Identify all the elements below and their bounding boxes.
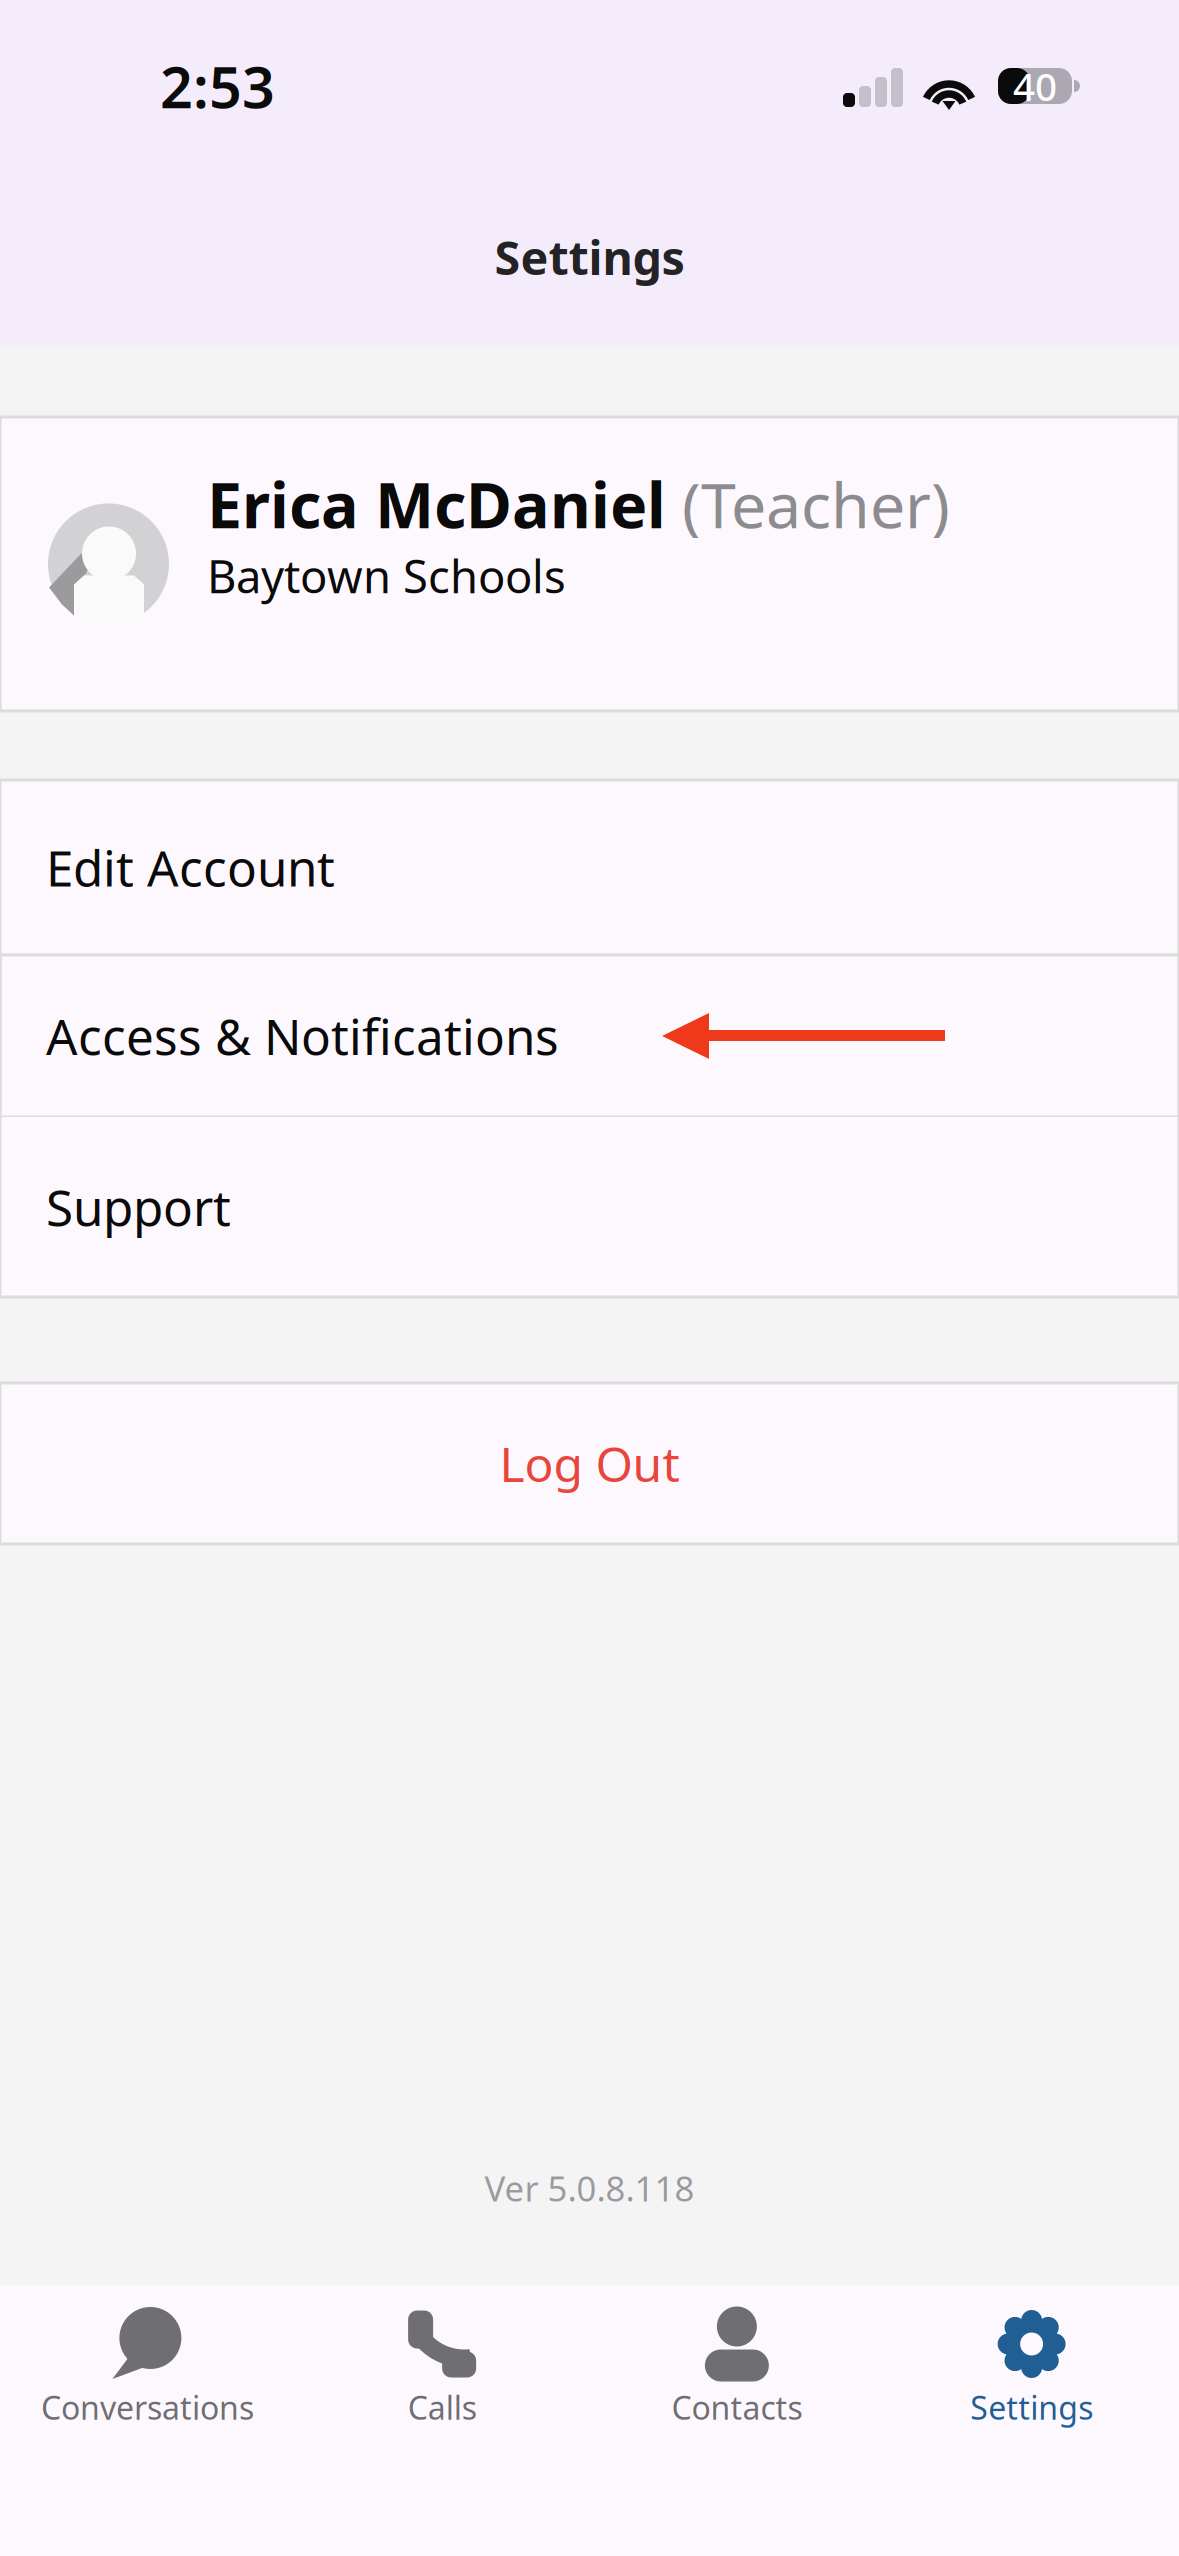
staticText: Contacts: [671, 2386, 802, 2428]
button[interactable]: Contacts: [589, 2285, 884, 2556]
staticText: Conversations: [41, 2386, 254, 2428]
staticText: Ver 5.0.8.118: [484, 2165, 694, 2211]
staticText: Erica McDaniel: [207, 462, 666, 545]
staticText: Access & Notifications: [46, 1003, 559, 1069]
staticText: Baytown Schools: [207, 545, 566, 606]
button[interactable]: Log Out: [0, 1383, 1179, 1544]
button[interactable]: Conversations: [0, 2285, 295, 2556]
staticText: (Teacher): [666, 462, 950, 545]
staticText: Log Out: [499, 1432, 679, 1495]
staticText: Settings: [970, 2386, 1093, 2428]
staticText: Settings: [494, 226, 684, 288]
button[interactable]: Settings: [884, 2285, 1179, 2556]
staticText: Support: [46, 1174, 231, 1240]
staticText: 40: [1013, 60, 1057, 112]
button[interactable]: Access & Notifications: [0, 955, 1179, 1117]
button[interactable]: Calls: [295, 2285, 590, 2556]
button[interactable]: Support: [0, 1117, 1179, 1297]
button[interactable]: Edit Account: [0, 780, 1179, 955]
staticText: Calls: [408, 2386, 477, 2428]
staticText: Edit Account: [46, 835, 335, 900]
staticText: 2:53: [160, 48, 275, 124]
